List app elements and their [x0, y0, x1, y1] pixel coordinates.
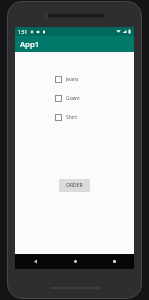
button[interactable]: Gown	[54, 94, 81, 103]
button[interactable]: Home	[56, 254, 94, 269]
staticText: App1	[20, 39, 40, 50]
staticText: 1:51	[18, 29, 28, 35]
staticText: Gown	[66, 95, 80, 102]
button[interactable]: ORDER	[59, 179, 90, 192]
staticText: Jeans	[66, 76, 79, 83]
button[interactable]: Back	[16, 254, 54, 269]
staticText: ORDER	[66, 182, 83, 189]
button[interactable]: Recent apps	[95, 254, 133, 269]
staticText: Shirt	[66, 114, 77, 121]
button[interactable]: Jeans	[54, 75, 80, 84]
button[interactable]: Shirt	[54, 113, 78, 122]
